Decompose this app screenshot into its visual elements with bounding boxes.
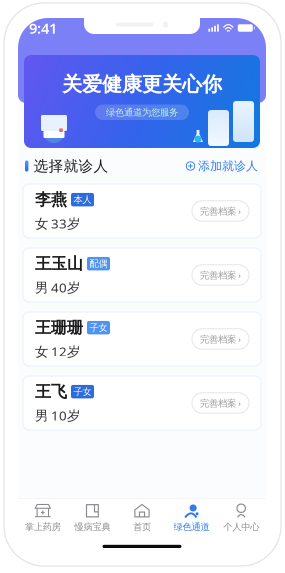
button[interactable]: 添加就诊人 <box>186 154 258 178</box>
button[interactable]: 首页 <box>117 499 167 537</box>
staticText: 王玉山 <box>35 254 83 273</box>
staticText: 李燕 <box>35 190 67 209</box>
staticText: 慢病宝典 <box>74 521 110 533</box>
button[interactable]: 王珊珊 <box>23 312 261 366</box>
staticText: 完善档案 › <box>200 333 241 345</box>
staticText: 个人中心 <box>223 521 259 533</box>
staticText: 子女 <box>89 322 107 333</box>
staticText: 王飞 <box>35 382 67 401</box>
staticText: 女 12岁 <box>35 342 80 360</box>
staticText: 子女 <box>73 386 91 397</box>
staticText: 9:41 <box>29 18 57 38</box>
staticText: 王珊珊 <box>35 318 83 337</box>
staticText: 男 10岁 <box>35 406 80 424</box>
staticText: 完善档案 › <box>200 397 241 409</box>
staticText: 绿色通道 <box>174 521 210 533</box>
staticText: 添加就诊人 <box>198 159 258 173</box>
button[interactable]: 慢病宝典 <box>68 499 117 537</box>
staticText: 完善档案 › <box>200 205 241 217</box>
button[interactable]: 掌上药房 <box>18 499 68 537</box>
button[interactable]: 个人中心 <box>216 499 266 537</box>
staticText: 女 33岁 <box>35 214 80 232</box>
staticText: 选择就诊人 <box>33 157 108 175</box>
button[interactable]: 李燕 <box>23 184 261 238</box>
staticText: 首页 <box>133 521 151 533</box>
staticText: 男 40岁 <box>35 278 80 296</box>
button[interactable]: 王玉山 <box>23 248 261 302</box>
staticText: 绿色通道为您服务 <box>106 107 178 118</box>
staticText: 掌上药房 <box>25 521 61 533</box>
staticText: 完善档案 › <box>200 269 241 281</box>
button[interactable]: 王飞 <box>23 376 261 430</box>
button[interactable]: 绿色通道 <box>167 499 216 537</box>
staticText: 配偶 <box>89 258 107 269</box>
staticText: 本人 <box>73 194 91 205</box>
staticText: 关爱健康更关心你 <box>62 72 222 97</box>
